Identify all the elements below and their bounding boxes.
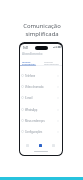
button[interactable]: Configurações — [20, 126, 62, 137]
staticText: Atendimento — [22, 52, 43, 56]
button[interactable]: E-mail — [20, 92, 62, 103]
button[interactable]: Vídeo chamada — [20, 81, 62, 92]
button[interactable]: Minhas solicitações — [21, 59, 37, 66]
button[interactable]: Perfil — [48, 141, 59, 149]
button[interactable]: Solicitações — [35, 141, 46, 149]
staticText: Meus endereços — [25, 119, 45, 122]
staticText: Vídeo chamada — [25, 85, 44, 88]
button[interactable]: Início — [22, 141, 33, 149]
staticText: Minhas solicitações — [22, 60, 38, 66]
staticText: Comunicação — [23, 22, 61, 30]
staticText: WhatsApp — [25, 108, 38, 111]
button[interactable]: Meus endereços — [20, 115, 62, 126]
staticText: Solicitar atendimento — [44, 60, 60, 66]
button[interactable]: WhatsApp — [20, 104, 62, 115]
staticText: Telefone — [25, 74, 36, 77]
staticText: simplificada — [25, 30, 59, 38]
button[interactable]: Telefone — [20, 70, 62, 81]
staticText: E-mail — [25, 96, 33, 99]
staticText: Configurações — [25, 130, 43, 133]
staticText: 9:41 — [23, 46, 28, 49]
button[interactable]: Solicitar atendimento — [43, 59, 59, 66]
